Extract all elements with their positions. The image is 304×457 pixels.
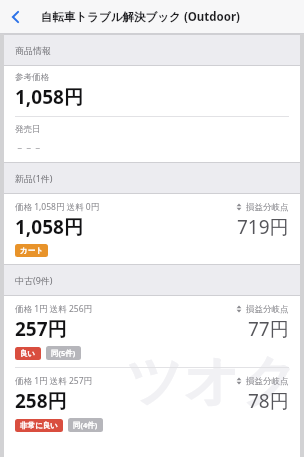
staticText: 損益分岐点 <box>246 202 289 213</box>
button[interactable]: 良い <box>15 347 41 360</box>
button[interactable]: 同(5件) <box>46 346 81 360</box>
staticText: 価格 1円 送料 257円 <box>15 375 93 387</box>
staticText: 同(4件) <box>73 420 98 430</box>
staticText: 自転車トラブル解決ブック (Outdoor) <box>41 9 241 25</box>
button[interactable]: 価格 1,058円 送料 0円 <box>4 194 300 264</box>
staticText: 発売日 <box>15 124 41 135</box>
button[interactable]: 価格 1円 送料 256円 <box>4 296 300 367</box>
staticText: 良い <box>20 349 36 358</box>
button[interactable]: 非常に良い <box>15 419 63 432</box>
staticText: 価格 1円 送料 256円 <box>15 303 93 315</box>
staticText: 719円 <box>237 214 289 240</box>
staticText: 参考価格 <box>15 72 49 83</box>
staticText: 1,058円 <box>15 84 83 110</box>
staticText: ツオク <box>126 346 298 417</box>
staticText: 258円 <box>15 388 67 414</box>
button[interactable]: Back <box>0 2 30 32</box>
staticText: 価格 1,058円 送料 0円 <box>15 201 100 213</box>
staticText: 77円 <box>248 316 289 342</box>
button[interactable]: 同(4件) <box>68 418 103 432</box>
staticText: 1,058円 <box>15 214 83 240</box>
button[interactable]: 価格 1円 送料 257円 <box>4 368 300 439</box>
staticText: カート <box>20 246 43 255</box>
staticText: 257円 <box>15 316 67 342</box>
staticText: 損益分岐点 <box>246 304 289 315</box>
staticText: －－－ <box>15 142 42 153</box>
staticText: 78円 <box>248 388 289 414</box>
staticText: 新品(1件) <box>15 172 53 184</box>
staticText: 同(5件) <box>51 348 76 358</box>
staticText: 損益分岐点 <box>246 376 289 387</box>
staticText: 商品情報 <box>15 45 51 56</box>
staticText: 非常に良い <box>20 421 58 430</box>
button[interactable]: カート <box>15 244 48 257</box>
staticText: 中古(9件) <box>15 274 53 286</box>
